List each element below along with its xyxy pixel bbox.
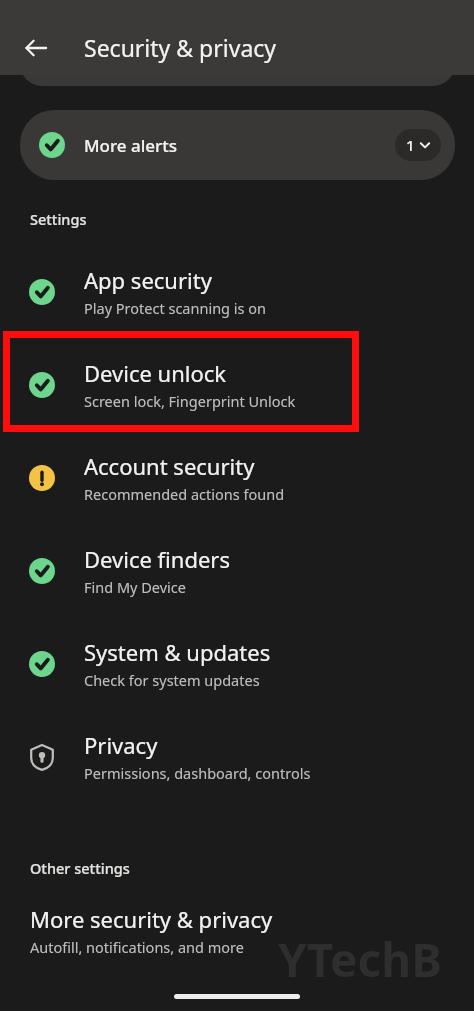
button[interactable]: App security (0, 245, 474, 338)
staticText: Security & privacy (84, 32, 277, 63)
staticText: Device unlock (84, 358, 227, 388)
staticText: Device finders (84, 544, 230, 574)
staticText: Settings (30, 209, 87, 229)
staticText: Play Protect scanning is on (84, 298, 266, 318)
button[interactable]: Account security (0, 431, 474, 524)
staticText: Screen lock, Fingerprint Unlock (84, 391, 296, 411)
staticText: Permissions, dashboard, controls (84, 763, 311, 783)
button[interactable] (20, 42, 455, 86)
button[interactable]: More alerts (20, 110, 455, 180)
button[interactable]: Back (12, 24, 60, 72)
staticText: Autofill, notifications, and more (30, 937, 244, 957)
staticText: Recommended actions found (84, 484, 285, 504)
button[interactable]: Device finders (0, 524, 474, 617)
staticText: Other settings (30, 858, 130, 878)
staticText: App security (84, 265, 212, 295)
staticText: Privacy (84, 730, 158, 760)
staticText: 1 (406, 135, 415, 155)
button[interactable]: System & updates (0, 617, 474, 710)
button[interactable]: 1 (395, 129, 441, 161)
staticText: YTechB (278, 928, 442, 991)
staticText: Check for system updates (84, 670, 260, 690)
staticText: More alerts (84, 134, 178, 157)
staticText: Account security (84, 451, 255, 481)
button[interactable]: Device unlock (0, 338, 474, 431)
staticText: More security & privacy (30, 904, 273, 934)
button[interactable]: Privacy (0, 710, 474, 803)
staticText: System & updates (84, 637, 271, 667)
button[interactable]: More security & privacy (0, 890, 474, 970)
staticText: Find My Device (84, 577, 186, 597)
